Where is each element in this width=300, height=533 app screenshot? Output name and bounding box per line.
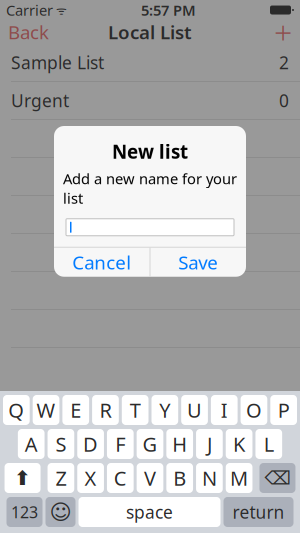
staticText: L <box>264 431 274 457</box>
staticText: J <box>207 431 212 457</box>
staticText: R <box>99 397 111 423</box>
staticText: W <box>37 397 56 423</box>
button[interactable]: O <box>241 395 267 425</box>
button[interactable]: N <box>196 463 223 493</box>
staticText: G <box>142 431 157 457</box>
button[interactable]: G <box>137 429 163 459</box>
button[interactable]: E <box>62 395 89 425</box>
staticText: H <box>172 431 187 457</box>
button[interactable]: S <box>48 429 74 459</box>
staticText: Q <box>8 397 24 423</box>
staticText: V <box>144 465 156 491</box>
staticText: 2 <box>279 51 289 74</box>
staticText: New list <box>112 139 188 164</box>
button[interactable]: Emoji <box>45 497 75 527</box>
button[interactable]: Add list <box>266 20 300 44</box>
button[interactable]: L <box>255 429 282 459</box>
staticText: Save <box>178 250 218 275</box>
button[interactable]: J <box>196 429 223 459</box>
staticText: 5:57 PM <box>141 0 196 20</box>
staticText: N <box>202 465 217 491</box>
button[interactable]: Q <box>3 395 30 425</box>
staticText: Cancel <box>72 250 131 275</box>
staticText: 123 <box>11 501 38 523</box>
staticText: Carrier <box>6 0 53 20</box>
button[interactable]: return <box>223 497 293 527</box>
staticText: Add a new name for your list <box>63 169 237 208</box>
staticText: ☺ <box>49 500 71 524</box>
button[interactable]: P <box>270 395 297 425</box>
button[interactable]: W <box>33 395 59 425</box>
button[interactable]: X <box>77 463 104 493</box>
button[interactable]: D <box>77 429 104 459</box>
button[interactable]: Z <box>48 463 74 493</box>
staticText: ᯤ <box>53 2 67 18</box>
staticText: return <box>232 500 284 523</box>
staticText: I <box>221 397 228 423</box>
button[interactable]: V <box>137 463 163 493</box>
staticText: D <box>83 431 98 457</box>
staticText: Sample List <box>11 51 104 74</box>
staticText: A <box>25 431 38 457</box>
button[interactable]: R <box>92 395 119 425</box>
button[interactable]: Shift <box>5 463 41 493</box>
staticText: Urgent <box>11 89 69 112</box>
button[interactable]: Cancel <box>54 248 149 277</box>
staticText: S <box>55 431 66 457</box>
button[interactable]: Delete <box>259 463 295 493</box>
button[interactable]: U <box>181 395 208 425</box>
staticText: space <box>126 500 173 523</box>
staticText: ⬆ <box>14 467 31 489</box>
staticText: F <box>115 431 125 457</box>
button[interactable]: H <box>166 429 193 459</box>
staticText: C <box>114 465 127 491</box>
button[interactable]: Save <box>150 248 246 277</box>
button[interactable]: I <box>211 395 238 425</box>
staticText: U <box>187 397 202 423</box>
staticText: O <box>246 397 262 423</box>
staticText: P <box>278 397 290 423</box>
staticText: ⌫ <box>264 467 290 489</box>
staticText: X <box>85 465 97 491</box>
button[interactable]: space <box>78 497 220 527</box>
button[interactable]: K <box>226 429 252 459</box>
staticText: E <box>70 397 81 423</box>
button[interactable]: 123 <box>6 497 42 527</box>
staticText: Local List <box>108 20 192 44</box>
staticText: 0 <box>279 89 289 112</box>
staticText: K <box>233 431 245 457</box>
button[interactable]: F <box>107 429 134 459</box>
staticText: Y <box>159 397 170 423</box>
button[interactable]: A <box>18 429 45 459</box>
button[interactable]: B <box>166 463 193 493</box>
button[interactable]: Back <box>0 20 57 44</box>
staticText: Back <box>8 20 49 44</box>
button[interactable]: Y <box>151 395 178 425</box>
button[interactable]: C <box>107 463 134 493</box>
button[interactable]: M <box>226 463 252 493</box>
staticText: Z <box>55 465 66 491</box>
staticText: T <box>130 397 141 423</box>
button[interactable]: T <box>122 395 148 425</box>
staticText: + <box>274 11 292 53</box>
staticText: B <box>173 465 186 491</box>
staticText: M <box>230 465 248 491</box>
